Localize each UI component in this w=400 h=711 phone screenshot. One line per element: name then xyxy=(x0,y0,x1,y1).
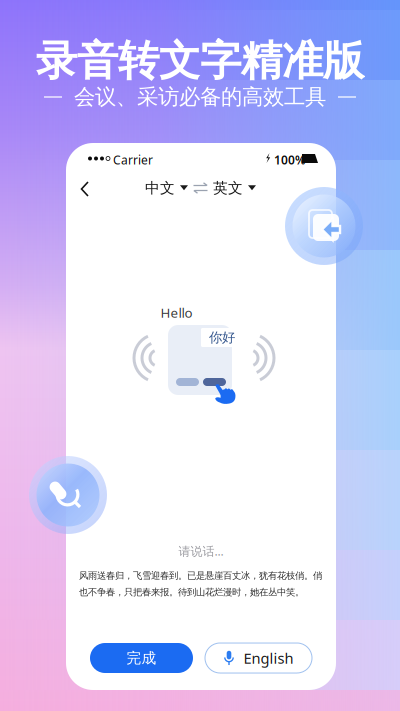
staticText: English xyxy=(243,648,293,668)
staticText: 风雨送春归，飞雪迎春到。已是悬崖百丈冰，犹有花枝俏。俏也不争春，只把春来报。待到… xyxy=(79,570,322,598)
button[interactable]: Back xyxy=(74,174,102,202)
button[interactable]: 英文 xyxy=(213,174,261,202)
staticText: Hello xyxy=(160,304,192,321)
staticText: 英文 xyxy=(213,179,243,197)
staticText: 会议、采访必备的高效工具 xyxy=(74,84,326,110)
staticText: 完成 xyxy=(126,649,156,667)
button[interactable]: English xyxy=(205,643,312,673)
button[interactable]: Import text xyxy=(284,186,364,266)
staticText: 100% xyxy=(274,152,306,168)
staticText: 录音转文字精准版 xyxy=(36,36,364,86)
staticText: Carrier xyxy=(113,152,153,168)
staticText: 你好 xyxy=(209,329,235,346)
staticText: 请说话... xyxy=(178,543,223,559)
button[interactable]: Record xyxy=(28,455,108,535)
button[interactable]: 中文 xyxy=(145,174,193,202)
staticText: 中文 xyxy=(145,179,175,197)
button[interactable]: 完成 xyxy=(90,643,193,673)
